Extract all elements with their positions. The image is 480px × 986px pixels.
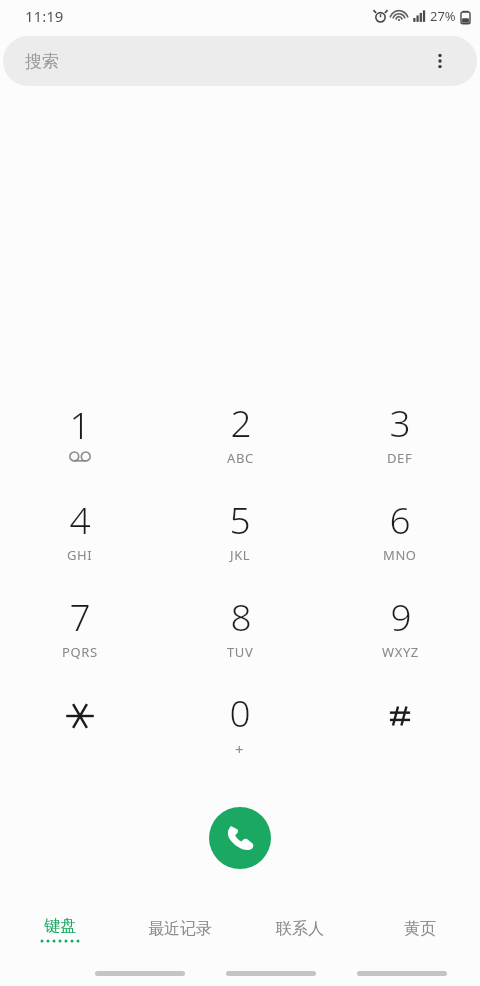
- staticText: ABC: [227, 449, 254, 467]
- button[interactable]: 9: [320, 577, 480, 674]
- staticText: TUV: [227, 643, 254, 661]
- button[interactable]: 4: [0, 480, 160, 577]
- button[interactable]: 1: [0, 383, 160, 480]
- staticText: 5: [229, 494, 251, 544]
- staticText: MNO: [383, 546, 417, 564]
- staticText: 1: [69, 399, 91, 449]
- staticText: 11:19: [25, 6, 64, 26]
- staticText: 黄页: [404, 919, 436, 939]
- staticText: 6: [389, 494, 411, 544]
- staticText: 2: [230, 397, 252, 447]
- button[interactable]: More options: [425, 46, 455, 76]
- button[interactable]: Call: [209, 807, 271, 869]
- button[interactable]: 7: [0, 577, 160, 674]
- button[interactable]: 最近记录: [120, 905, 240, 953]
- button[interactable]: [0, 674, 160, 771]
- staticText: 3: [389, 397, 411, 447]
- staticText: 4: [69, 494, 91, 544]
- staticText: WXYZ: [382, 643, 419, 661]
- staticText: 最近记录: [148, 919, 212, 939]
- button[interactable]: 联系人: [240, 905, 360, 953]
- staticText: DEF: [387, 449, 413, 467]
- button[interactable]: 8: [160, 577, 320, 674]
- staticText: +: [235, 739, 245, 759]
- staticText: 联系人: [276, 919, 324, 939]
- button[interactable]: 5: [160, 480, 320, 577]
- staticText: 0: [229, 687, 251, 737]
- button[interactable]: 黄页: [360, 905, 480, 953]
- staticText: 27%: [430, 7, 456, 25]
- button[interactable]: 键盘: [0, 905, 120, 953]
- staticText: 9: [390, 591, 412, 641]
- staticText: GHI: [67, 546, 93, 564]
- staticText: JKL: [230, 546, 251, 564]
- staticText: 搜索: [25, 51, 59, 72]
- staticText: PQRS: [62, 643, 98, 661]
- button[interactable]: 3: [320, 383, 480, 480]
- staticText: 键盘: [44, 916, 76, 936]
- staticText: 8: [230, 591, 252, 641]
- button[interactable]: 6: [320, 480, 480, 577]
- button[interactable]: [320, 674, 480, 771]
- button[interactable]: 搜索: [3, 36, 477, 86]
- button[interactable]: 2: [160, 383, 320, 480]
- staticText: 7: [69, 591, 91, 641]
- button[interactable]: 0: [160, 674, 320, 771]
